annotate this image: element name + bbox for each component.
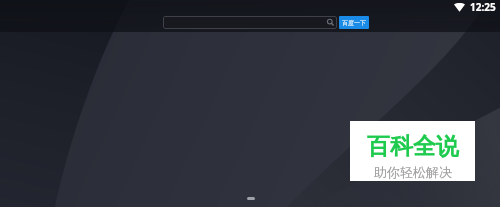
staticText: 百科全说 — [367, 132, 459, 161]
staticText: 助你轻松解决 — [374, 164, 452, 180]
other: Wi-Fi — [454, 3, 465, 12]
staticText: 百度一下 — [342, 19, 366, 27]
staticText: 12:25 — [470, 0, 496, 14]
button[interactable]: Search box — [163, 16, 337, 29]
button[interactable]: Home — [247, 197, 255, 200]
button[interactable]: 百度一下 — [339, 16, 369, 29]
